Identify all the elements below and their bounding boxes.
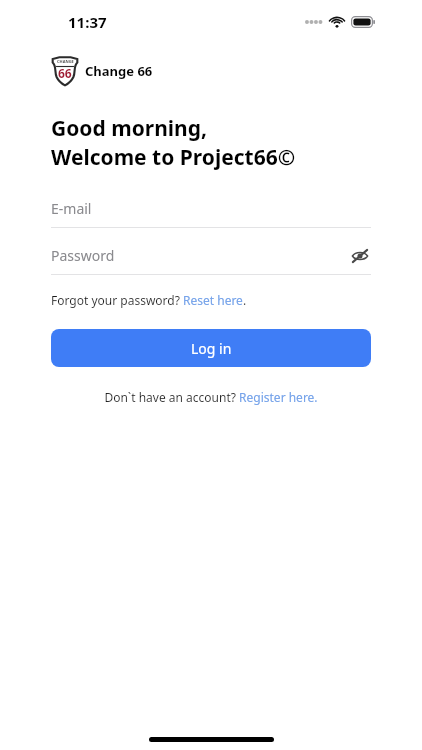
button[interactable]: Show password xyxy=(349,245,371,266)
staticText: Forgot your password? Reset here. xyxy=(51,292,247,308)
staticText: Welcome to Project66© xyxy=(51,143,296,172)
button[interactable]: Password xyxy=(51,245,371,266)
button[interactable]: Forgot your password? Reset here. xyxy=(51,292,247,308)
button[interactable]: Don`t have an account? Register here. xyxy=(0,389,422,405)
staticText: Don`t have an account? Register here. xyxy=(104,389,318,405)
staticText: 66 xyxy=(58,65,72,81)
staticText: Password xyxy=(51,246,115,265)
button[interactable]: Log in xyxy=(51,329,371,367)
staticText: 11:37 xyxy=(68,12,107,32)
staticText: E-mail xyxy=(51,199,92,218)
staticText: Change 66 xyxy=(85,62,153,80)
button[interactable]: E-mail xyxy=(51,198,371,219)
button[interactable]: CHANGE xyxy=(51,56,153,86)
staticText: Good morning, xyxy=(51,114,208,143)
staticText: CHANGE xyxy=(57,59,74,64)
staticText: Log in xyxy=(191,339,232,358)
